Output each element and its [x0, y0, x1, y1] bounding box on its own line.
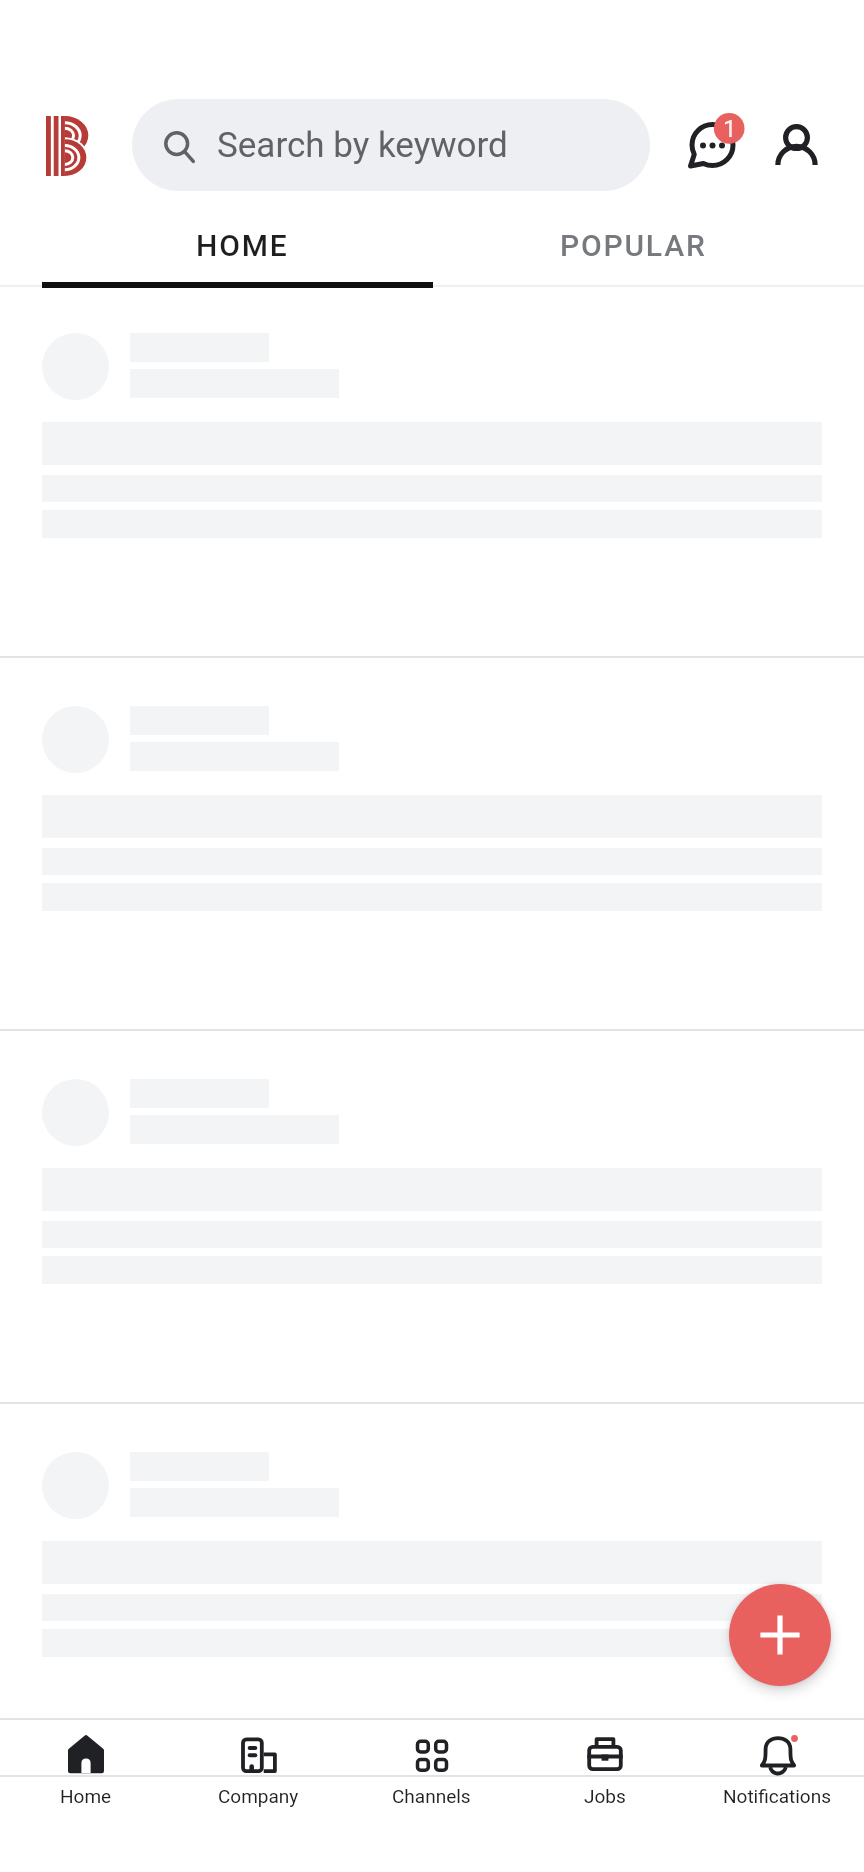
staticText: Notifications [723, 1785, 832, 1807]
button[interactable]: Profile [761, 108, 835, 182]
button[interactable]: Create post [729, 1584, 831, 1686]
button[interactable]: Company [172, 1720, 345, 1872]
staticText: 1 [723, 115, 737, 143]
button[interactable]: HOME [47, 201, 438, 289]
button[interactable]: Messages [676, 99, 752, 175]
staticText: Company [218, 1785, 299, 1807]
staticText: Jobs [584, 1785, 626, 1807]
staticText: Search by keyword [217, 125, 508, 166]
staticText: HOME [196, 228, 289, 263]
button[interactable]: Blind home [24, 104, 112, 188]
staticText: POPULAR [560, 228, 707, 263]
staticText: Channels [392, 1785, 471, 1807]
staticText: Home [60, 1785, 112, 1807]
button[interactable]: Search by keyword [132, 99, 650, 191]
button[interactable]: Jobs [518, 1720, 691, 1872]
button[interactable]: Notifications [691, 1720, 864, 1872]
button[interactable]: Home [0, 1720, 172, 1872]
button[interactable]: Channels [345, 1720, 518, 1872]
button[interactable]: POPULAR [438, 201, 829, 289]
